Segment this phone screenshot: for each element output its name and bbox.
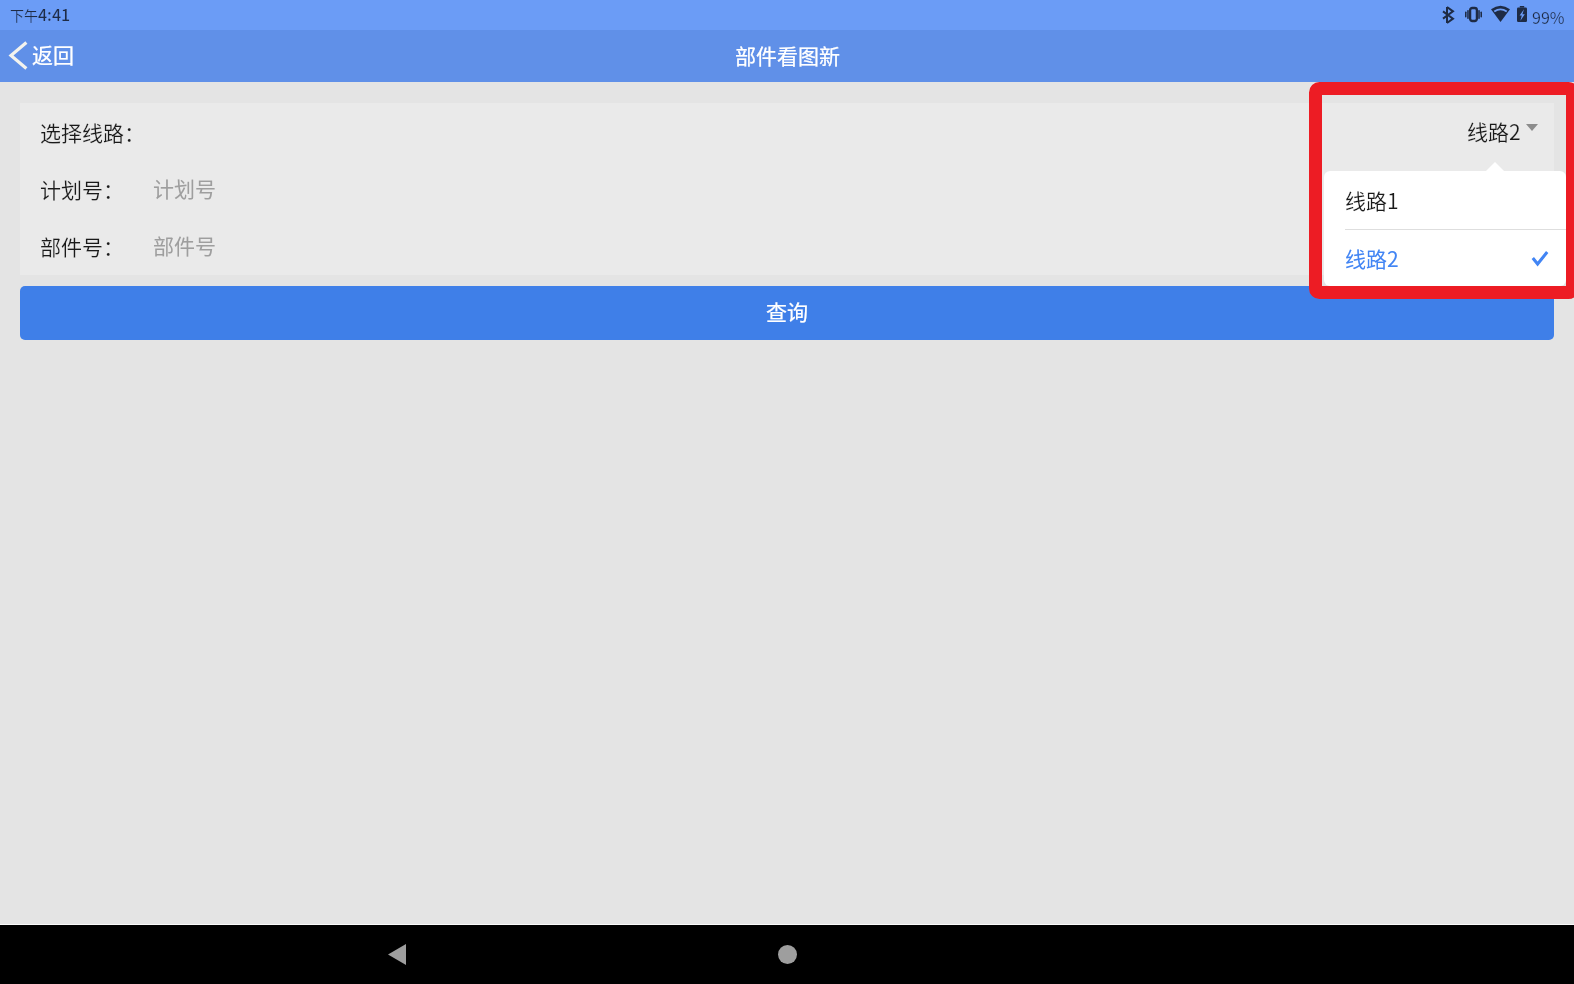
button[interactable]: 返回 — [0, 30, 90, 82]
staticText: 计划号： — [40, 174, 124, 202]
button[interactable]: Back — [357, 925, 437, 984]
staticText: 计划号 — [153, 173, 216, 201]
staticText: 部件号： — [40, 231, 124, 259]
staticText: 线路1 — [1345, 185, 1399, 215]
staticText: 下午4:41 — [10, 2, 71, 25]
button[interactable]: Home — [747, 925, 827, 984]
staticText: 查询 — [766, 296, 808, 326]
staticText: 线路2 — [1467, 116, 1521, 146]
button[interactable]: 线路1 — [1324, 171, 1566, 229]
staticText: 99% — [1532, 5, 1565, 28]
button[interactable]: 线路2 — [1324, 230, 1566, 286]
staticText: 线路2 — [1345, 243, 1399, 273]
staticText: 选择线路： — [40, 117, 145, 145]
button[interactable]: 查询 — [20, 286, 1554, 340]
staticText: 返回 — [32, 39, 74, 69]
staticText: 部件看图新 — [735, 40, 840, 70]
staticText: 部件号 — [153, 230, 216, 258]
button[interactable]: 线路2 — [1430, 105, 1554, 160]
